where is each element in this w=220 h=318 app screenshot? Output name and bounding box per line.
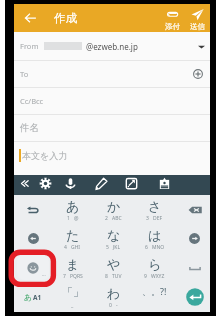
staticText: な <box>107 227 121 243</box>
staticText: や <box>107 256 121 272</box>
button[interactable]: Backspace <box>175 195 210 224</box>
button[interactable]: Collapse keyboard <box>18 177 31 190</box>
staticText: WXYZ <box>151 273 165 280</box>
staticText: 「」 <box>62 285 84 299</box>
staticText: 件名 <box>20 122 39 134</box>
button[interactable]: Undo <box>14 195 52 224</box>
button[interactable]: な <box>93 224 134 253</box>
staticText: 送信 <box>190 22 205 31</box>
staticText: ··· <box>42 272 46 278</box>
button[interactable]: Space <box>175 253 210 282</box>
staticText: 7 <box>63 273 66 280</box>
button[interactable]: Cursor left <box>14 224 52 253</box>
button[interactable]: Enter <box>175 282 210 311</box>
staticText: DEF <box>153 215 163 222</box>
button[interactable]: Switch input mode <box>14 282 52 311</box>
button[interactable]: Emoji <box>17 255 49 280</box>
button[interactable]: ら <box>134 253 175 282</box>
button[interactable]: わ <box>93 282 134 311</box>
staticText: か <box>107 198 121 214</box>
staticText: From <box>20 41 39 51</box>
staticText: 8 <box>105 273 108 280</box>
button[interactable]: か <box>93 195 134 224</box>
staticText: Cc/Bcc <box>20 96 44 106</box>
staticText: PQRS <box>70 273 83 280</box>
button[interactable]: は <box>134 224 175 253</box>
button[interactable]: To <box>20 61 205 87</box>
button[interactable]: Back <box>19 4 41 32</box>
staticText: 3 <box>146 215 149 222</box>
staticText: 9 <box>144 273 147 280</box>
staticText: た <box>66 227 80 243</box>
button[interactable]: 本文を入力 <box>19 142 210 168</box>
staticText: 作成 <box>54 11 77 25</box>
staticText: ABC <box>112 215 122 222</box>
staticText: GHI <box>71 244 81 251</box>
button[interactable]: 「」 <box>52 282 93 311</box>
staticText: ら <box>148 256 162 272</box>
button[interactable]: た <box>52 224 93 253</box>
staticText: @ <box>74 215 79 222</box>
button[interactable]: さ <box>134 195 175 224</box>
button[interactable]: ま <box>52 253 93 282</box>
button[interactable]: Keyboard settings <box>39 177 52 190</box>
staticText: は <box>148 227 162 243</box>
button[interactable]: 、。?! <box>134 282 175 311</box>
staticText: TUV <box>112 273 122 280</box>
staticText: さ <box>148 198 162 214</box>
button[interactable]: Add recipient <box>191 67 205 81</box>
staticText: 4 <box>64 244 67 251</box>
staticText: _ <box>71 302 74 309</box>
button[interactable]: 添付 <box>159 4 185 32</box>
staticText: ま <box>66 256 80 272</box>
button[interactable]: From <box>20 32 205 60</box>
staticText: あ <box>66 198 80 214</box>
staticText: 6 <box>145 244 148 251</box>
button[interactable]: 件名 <box>20 115 205 141</box>
staticText: 、。?! <box>142 285 167 297</box>
staticText: 1 <box>67 215 70 222</box>
staticText: A1 <box>33 293 42 302</box>
button[interactable]: Cc/Bcc <box>20 88 205 114</box>
button[interactable]: Stickers <box>125 177 138 190</box>
staticText: @ezweb.ne.jp <box>86 41 138 52</box>
staticText: 0 <box>109 302 112 309</box>
button[interactable]: や <box>93 253 134 282</box>
staticText: 2 <box>105 215 108 222</box>
button[interactable]: あ <box>52 195 93 224</box>
button[interactable]: Clipboard <box>158 177 171 190</box>
button[interactable]: Cursor right <box>175 224 210 253</box>
button[interactable]: 送信 <box>184 4 210 32</box>
staticText: To <box>20 69 29 79</box>
staticText: 5 <box>106 244 109 251</box>
button[interactable]: Handwriting <box>95 177 108 190</box>
staticText: JKL <box>113 244 121 251</box>
staticText: MNO <box>152 244 165 251</box>
staticText: - <box>116 302 118 309</box>
staticText: わ <box>107 285 121 301</box>
staticText: 添付 <box>165 22 180 31</box>
staticText: 本文を入力 <box>22 150 68 161</box>
button[interactable]: Voice input <box>64 177 77 190</box>
staticText: あ <box>24 292 33 302</box>
